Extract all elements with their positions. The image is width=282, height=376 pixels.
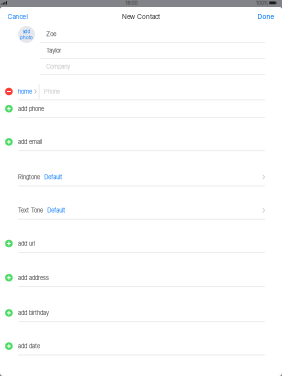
button[interactable]: add phone: [0, 100, 282, 118]
staticText: add address: [18, 274, 49, 281]
staticText: add birthday: [18, 309, 49, 317]
staticText: add url: [18, 240, 35, 247]
button[interactable]: add birthday: [0, 304, 282, 322]
staticText: Zoe: [46, 30, 56, 38]
staticText: New Contact: [122, 12, 160, 21]
staticText: Phone: [44, 88, 60, 95]
button[interactable]: add date: [0, 338, 282, 355]
button[interactable]: Done: [254, 8, 277, 25]
button[interactable]: Add photo: [18, 26, 35, 43]
button[interactable]: Text Tone: [0, 202, 282, 219]
staticText: Done: [257, 12, 274, 21]
button[interactable]: add address: [0, 269, 282, 287]
button[interactable]: add url: [0, 235, 282, 253]
staticText: 100%: [256, 0, 268, 6]
staticText: photo: [20, 34, 33, 40]
button[interactable]: add email: [0, 133, 282, 151]
staticText: Text Tone: [18, 207, 43, 214]
staticText: Default: [44, 173, 62, 181]
button[interactable]: home: [0, 83, 282, 100]
button[interactable]: Cancel: [4, 8, 30, 25]
staticText: Default: [47, 207, 65, 214]
staticText: add email: [18, 138, 42, 146]
staticText: Company: [46, 63, 70, 70]
staticText: add: [22, 29, 30, 34]
staticText: Ringtone: [18, 173, 40, 181]
staticText: Cancel: [7, 12, 27, 21]
staticText: Taylor: [46, 47, 61, 54]
staticText: add date: [18, 342, 40, 350]
staticText: add phone: [18, 105, 44, 112]
staticText: 18:00: [125, 0, 137, 6]
button[interactable]: Ringtone: [0, 169, 282, 186]
staticText: home: [18, 88, 32, 95]
